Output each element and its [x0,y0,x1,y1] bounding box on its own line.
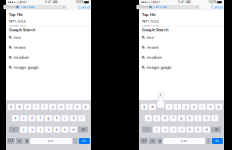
button[interactable]: NYT.TITLE [139,19,224,26]
button[interactable]: c [37,127,44,133]
button[interactable]: y [182,104,189,110]
button[interactable]: a [145,115,152,121]
button[interactable]: d [28,115,35,121]
button[interactable]: m [203,127,210,133]
button[interactable]: v [45,127,52,133]
staticText: – NYT.TITLE [20,5,34,9]
button[interactable]: imovie [6,42,91,52]
button[interactable]: space [163,138,205,144]
button[interactable]: y [49,104,56,110]
button[interactable]: Cancel [74,4,93,10]
button[interactable]: g [45,115,52,121]
button[interactable]: r [32,104,39,110]
staticText: se [149,5,152,9]
button[interactable]: t [174,104,181,110]
button[interactable]: ⌫ [78,127,88,133]
staticText: e [160,93,162,96]
button[interactable]: ◍ [25,138,29,144]
button[interactable]: . [206,138,211,144]
button[interactable]: c [170,127,177,133]
button[interactable]: b [53,127,60,133]
staticText: l [81,116,82,120]
staticText: imodium [147,55,163,60]
staticText: d [31,116,33,120]
button[interactable]: NYT.TITLE [6,19,91,26]
button[interactable]: ☺ [16,138,23,144]
button[interactable]: k [203,115,210,121]
button[interactable]: 123 [7,138,14,144]
button[interactable]: l [78,115,85,121]
button[interactable]: m [70,127,77,133]
button[interactable]: ⇧ [142,127,152,133]
button[interactable]: b [186,127,193,133]
button[interactable]: ◍ [158,138,162,144]
staticText: l [214,116,215,120]
button[interactable]: s [153,115,160,121]
staticText: h [56,116,58,120]
button[interactable]: imo [139,32,224,42]
button[interactable]: images google [139,62,224,72]
staticText: s [23,116,24,120]
button[interactable]: Go [212,138,223,144]
button[interactable]: z [20,127,27,133]
button[interactable]: f [37,115,44,121]
staticText: imovie [14,45,26,50]
button[interactable]: u [190,104,197,110]
button[interactable]: t [41,104,48,110]
button[interactable]: d [161,115,168,121]
button[interactable]: images google [6,62,91,72]
button[interactable]: . [73,138,78,144]
button[interactable]: h [53,115,60,121]
button[interactable]: space [30,138,72,144]
button[interactable]: e [24,104,31,110]
button[interactable]: s [20,115,27,121]
staticText: p [85,105,87,108]
staticText: c [173,128,174,131]
button[interactable]: w [16,104,23,110]
button[interactable]: q [8,104,15,110]
button[interactable]: i [66,104,73,110]
button[interactable]: imovie [139,42,224,52]
staticText: ☺ [18,139,21,142]
staticText: space [48,139,55,143]
button[interactable]: x [28,127,35,133]
button[interactable]: g [178,115,185,121]
button[interactable]: r [166,104,173,110]
button[interactable]: w [149,104,156,110]
button[interactable]: o [207,104,214,110]
button[interactable]: n [195,127,202,133]
button[interactable]: imo [6,32,91,42]
button[interactable]: ⌫ [211,127,221,133]
button[interactable]: x [161,127,168,133]
button[interactable]: k [70,115,77,121]
staticText: Cancel [211,4,223,10]
button[interactable]: i [199,104,206,110]
staticText: x [31,128,32,131]
button[interactable]: o [74,104,81,110]
button[interactable]: Cancel [207,4,226,10]
button[interactable]: imodium [139,52,224,62]
button[interactable]: l [211,115,218,121]
button[interactable]: j [195,115,202,121]
button[interactable]: ⇧ [9,127,19,133]
button[interactable]: ☺ [149,138,156,144]
button[interactable]: imodium [6,52,91,62]
button[interactable]: 123 [140,138,148,144]
staticText: a [15,116,16,120]
button[interactable]: Go [79,138,90,144]
staticText: u [60,105,62,108]
staticText: b [56,128,58,131]
button[interactable]: f [170,115,177,121]
button[interactable]: h [186,115,193,121]
button[interactable]: n [62,127,69,133]
button[interactable]: a [12,115,19,121]
staticText: ⌫ [81,128,85,131]
button[interactable]: p [82,104,89,110]
button[interactable]: q [141,104,148,110]
button[interactable]: z [153,127,160,133]
button[interactable]: p [215,104,222,110]
button[interactable]: v [178,127,185,133]
button[interactable]: u [57,104,64,110]
staticText: nytimes.com [9,24,25,27]
button[interactable]: j [62,115,69,121]
